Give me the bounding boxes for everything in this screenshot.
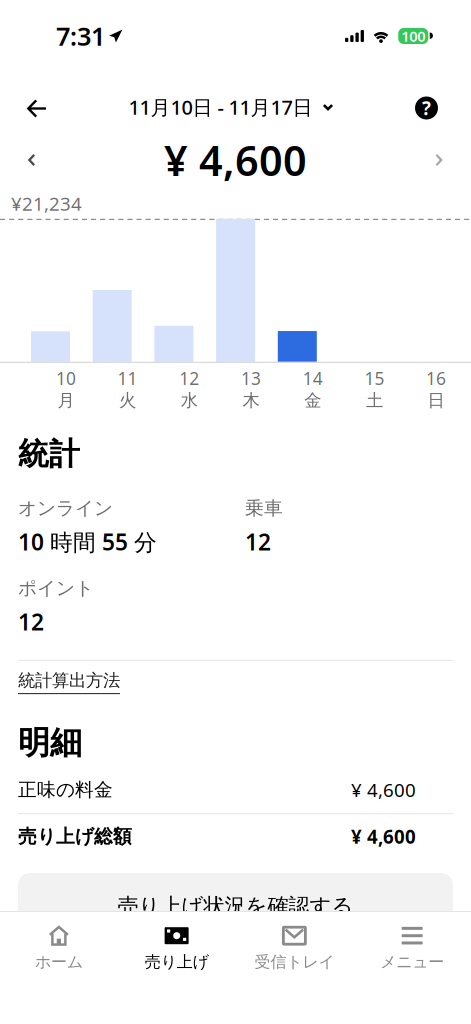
button[interactable]: 受信トレイ — [235, 907, 353, 981]
staticText: 10 — [56, 367, 76, 390]
staticText: 統計算出方法 — [18, 670, 120, 691]
staticText: 受信トレイ — [254, 952, 334, 972]
staticText: 売り上げ総額 — [18, 825, 132, 848]
staticText: 乗車 — [245, 497, 283, 520]
staticText: 12 — [179, 367, 199, 390]
staticText: ホーム — [35, 952, 83, 972]
staticText: ¥ 4,600 — [351, 824, 416, 849]
button[interactable]: Help — [399, 72, 471, 131]
staticText: ? — [422, 96, 431, 120]
staticText: 14 — [303, 367, 323, 390]
staticText: 土 — [366, 390, 383, 411]
staticText: 金 — [304, 390, 321, 411]
staticText: 12 — [245, 527, 271, 557]
staticText: ポイント — [18, 577, 94, 600]
button[interactable]: Previous week — [0, 135, 54, 184]
button[interactable]: 11月10日 - 11月17日 — [128, 72, 333, 132]
staticText: 12 — [18, 607, 44, 637]
button[interactable]: 売り上げ状況を確認する — [18, 873, 453, 939]
staticText: メニュー — [380, 952, 444, 972]
staticText: 100 — [401, 26, 425, 46]
button[interactable]: 統計算出方法 — [18, 670, 120, 694]
staticText: 明細 — [18, 723, 82, 762]
staticText: 13 — [241, 367, 261, 390]
staticText: ¥ 4,600 — [351, 777, 416, 802]
staticText: 15 — [364, 367, 384, 390]
staticText: ¥21,234 — [11, 191, 82, 216]
staticText: 正味の料金 — [18, 778, 113, 801]
button[interactable]: メニュー — [353, 907, 471, 981]
staticText: 売り上げ状況を確認する — [117, 893, 353, 919]
staticText: 16 — [426, 367, 446, 390]
staticText: 木 — [242, 390, 259, 411]
staticText: 火 — [119, 390, 136, 411]
staticText: ¥ 4,600 — [164, 133, 307, 187]
staticText: 売り上げ — [145, 952, 209, 972]
button[interactable]: Back — [0, 72, 63, 132]
staticText: 日 — [428, 390, 445, 411]
staticText: 統計 — [18, 435, 80, 473]
staticText: 11 — [118, 367, 138, 390]
staticText: オンライン — [18, 497, 113, 520]
staticText: 11月10日 - 11月17日 — [128, 94, 312, 120]
staticText: 水 — [181, 390, 198, 411]
button[interactable]: ホーム — [0, 907, 118, 981]
staticText: 月 — [57, 390, 74, 411]
button[interactable]: Next week — [417, 135, 471, 184]
staticText: 10 時間 55 分 — [18, 527, 157, 557]
button[interactable]: 売り上げ — [118, 907, 236, 981]
staticText: 7:31 — [56, 19, 105, 53]
